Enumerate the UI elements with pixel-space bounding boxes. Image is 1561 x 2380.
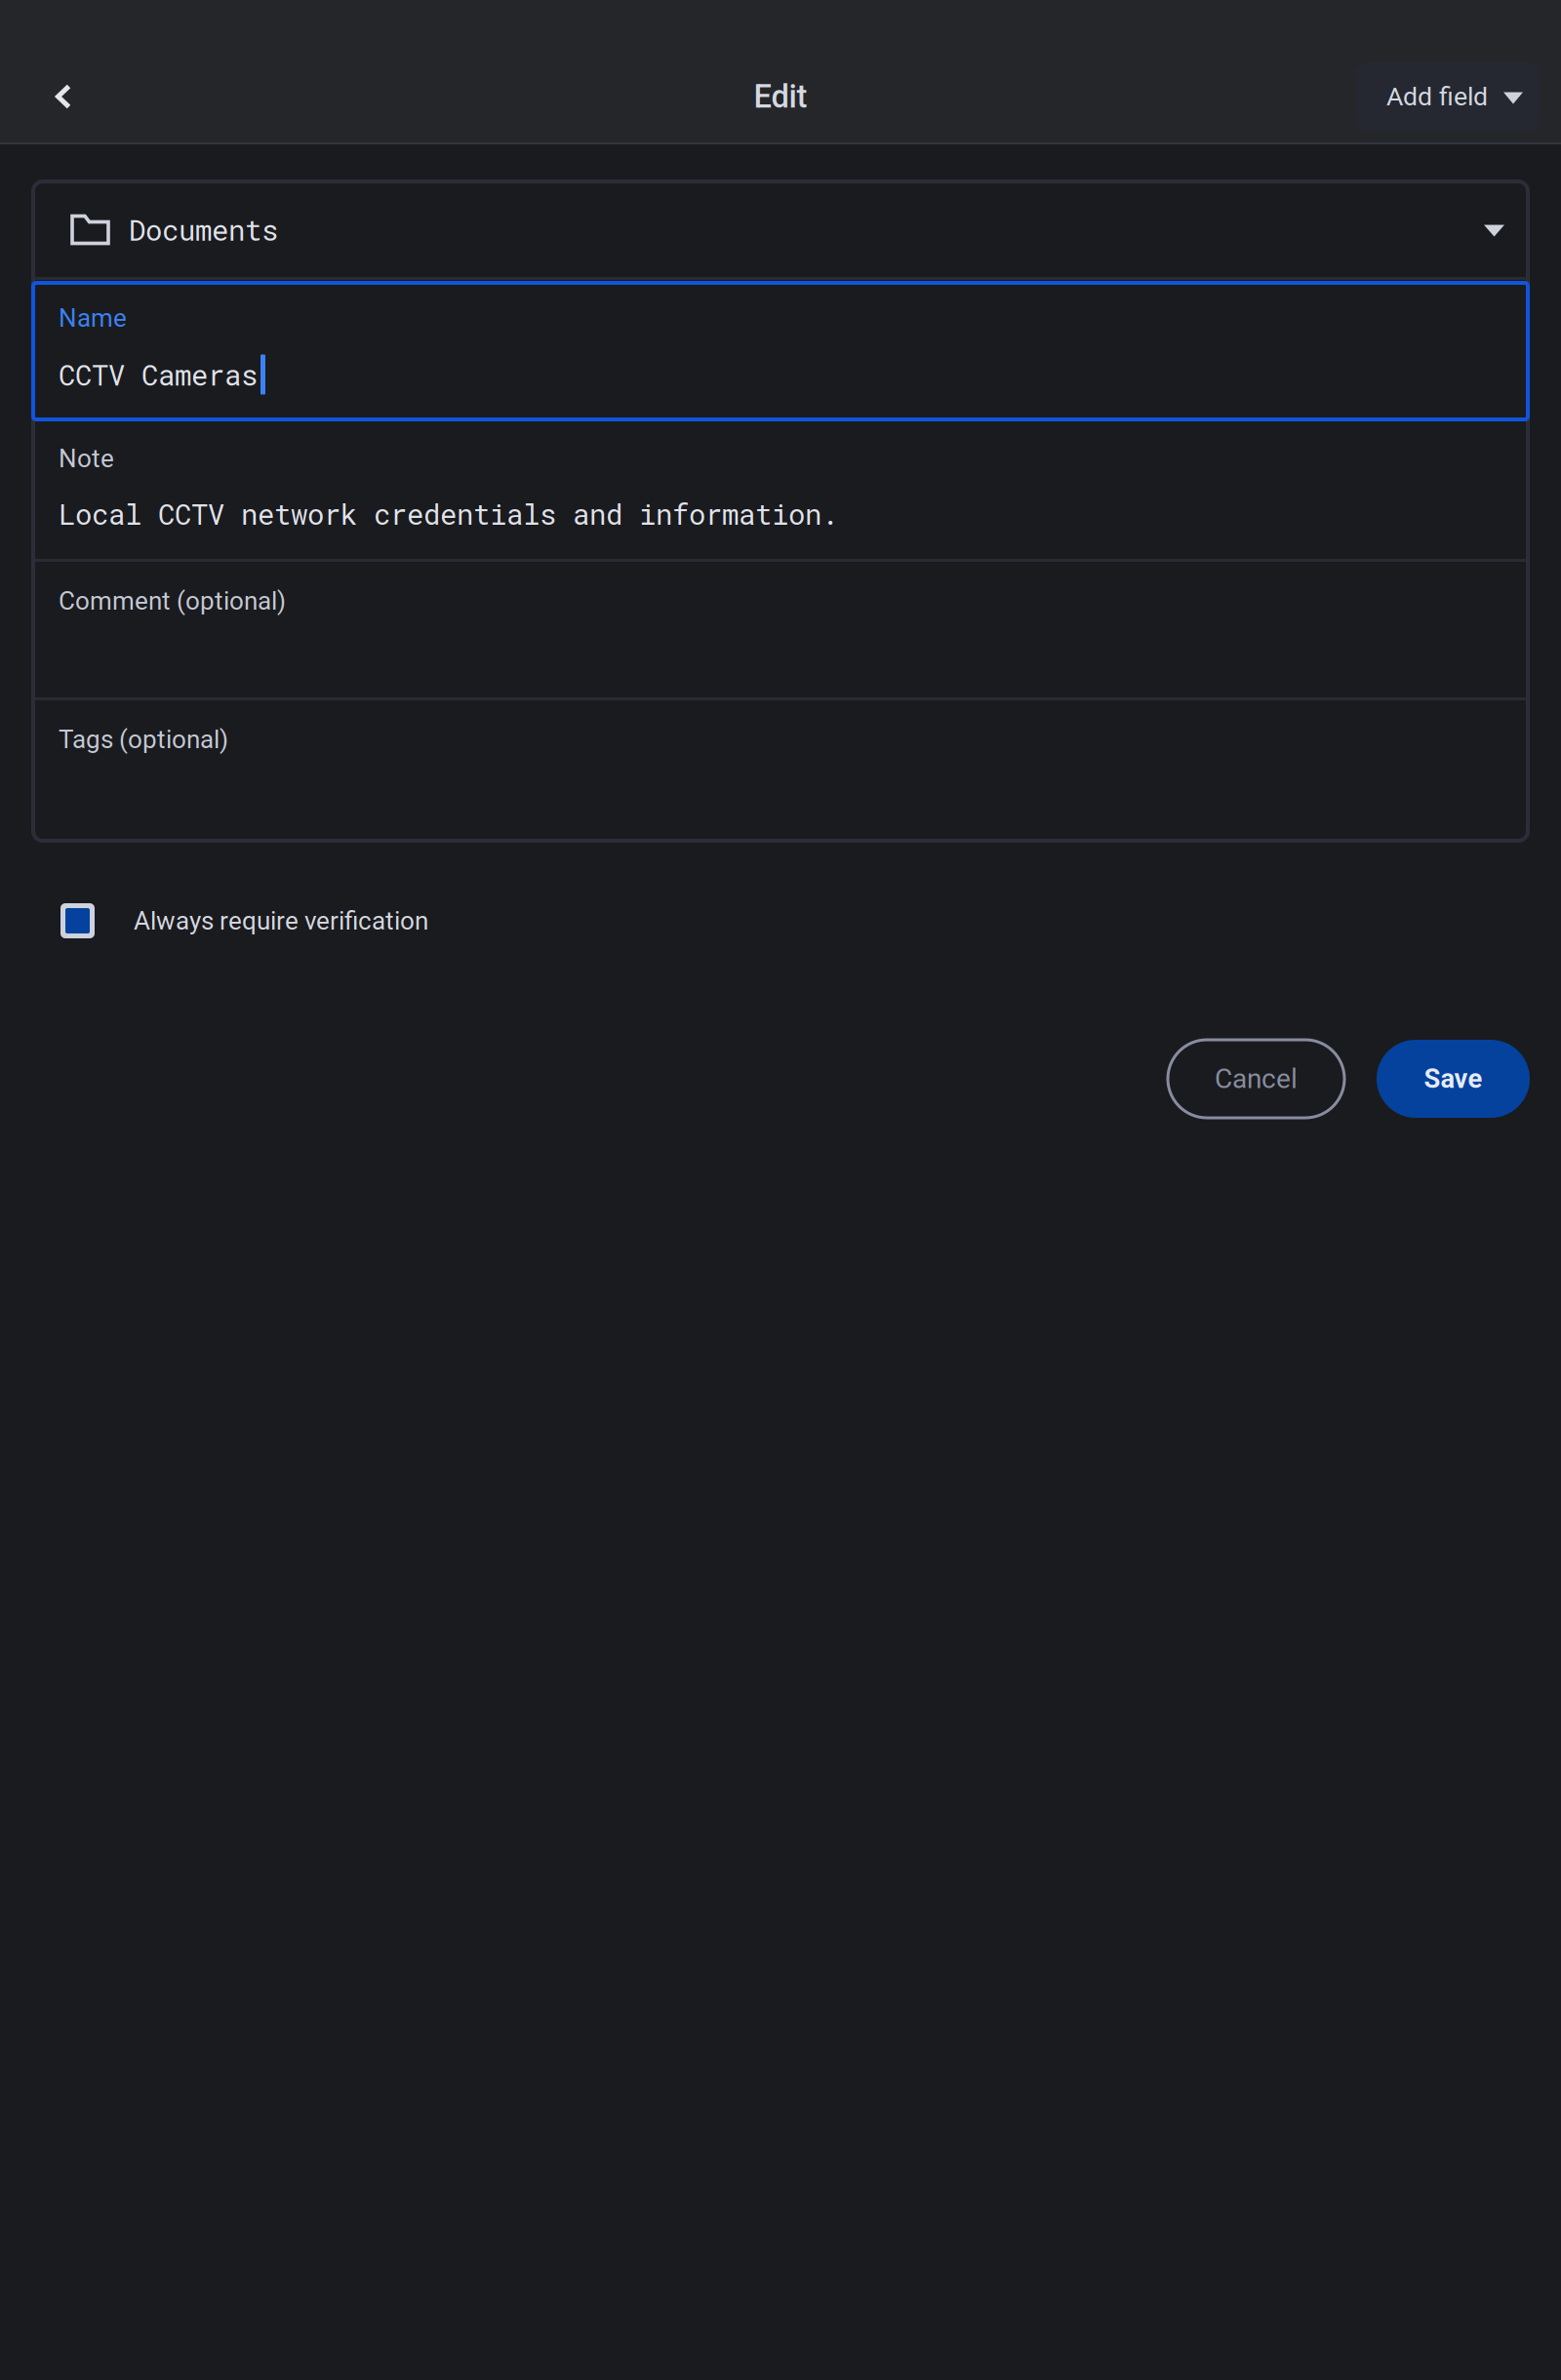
staticText: Name [59, 303, 127, 333]
staticText: Documents [129, 211, 278, 248]
staticText: Add field [1386, 81, 1488, 112]
staticText: Note [59, 444, 114, 474]
button[interactable]: Documents [31, 179, 1530, 280]
button[interactable]: Always require verification [60, 897, 428, 944]
staticText: Always require verification [134, 906, 428, 936]
button[interactable]: Save [1377, 1040, 1530, 1118]
button[interactable]: Cancel [1168, 1040, 1344, 1118]
button[interactable]: Add field [1356, 62, 1540, 131]
staticText: Local CCTV network credentials and infor… [59, 495, 838, 532]
staticText: Save [1424, 1063, 1482, 1094]
button[interactable]: Back [0, 51, 123, 142]
staticText: Cancel [1215, 1063, 1298, 1095]
staticText: Comment (optional) [59, 586, 286, 616]
staticText: Edit [754, 78, 807, 115]
staticText: CCTV Cameras [59, 356, 258, 393]
staticText: Tags (optional) [59, 725, 228, 754]
